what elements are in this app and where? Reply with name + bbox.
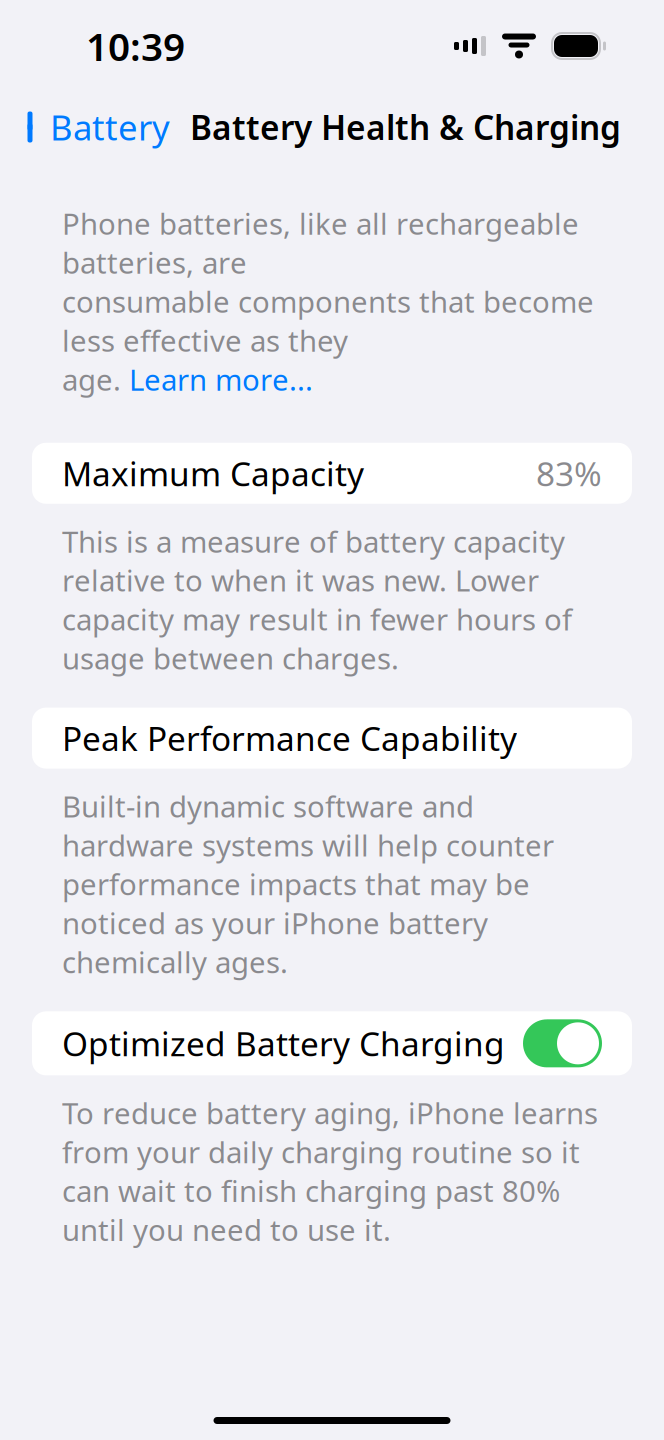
staticText: Battery Health & Charging — [190, 105, 621, 149]
button[interactable]: Learn more... — [129, 360, 313, 399]
staticText: 83% — [536, 451, 602, 495]
staticText: Learn more... — [129, 360, 313, 399]
button[interactable]: Maximum Capacity — [32, 443, 632, 504]
staticText: This is a measure of battery capacity re… — [62, 522, 572, 678]
button[interactable]: Peak Performance Capability — [32, 708, 632, 769]
button[interactable]: Battery — [0, 94, 184, 160]
staticText: Battery — [50, 104, 170, 150]
staticText: Phone batteries, like all rechargeable b… — [62, 204, 579, 282]
staticText: Peak Performance Capability — [62, 716, 517, 760]
staticText: 10:39 — [86, 20, 185, 72]
staticText: Built-in dynamic software and hardware s… — [62, 787, 554, 981]
staticText: age. — [62, 360, 129, 399]
button[interactable]: Optimized Battery Charging — [523, 1019, 602, 1067]
staticText: To reduce battery aging, iPhone learns f… — [62, 1093, 598, 1249]
staticText: Maximum Capacity — [62, 451, 364, 495]
staticText: consumable components that become less e… — [62, 282, 594, 360]
staticText: Optimized Battery Charging — [62, 1021, 505, 1065]
